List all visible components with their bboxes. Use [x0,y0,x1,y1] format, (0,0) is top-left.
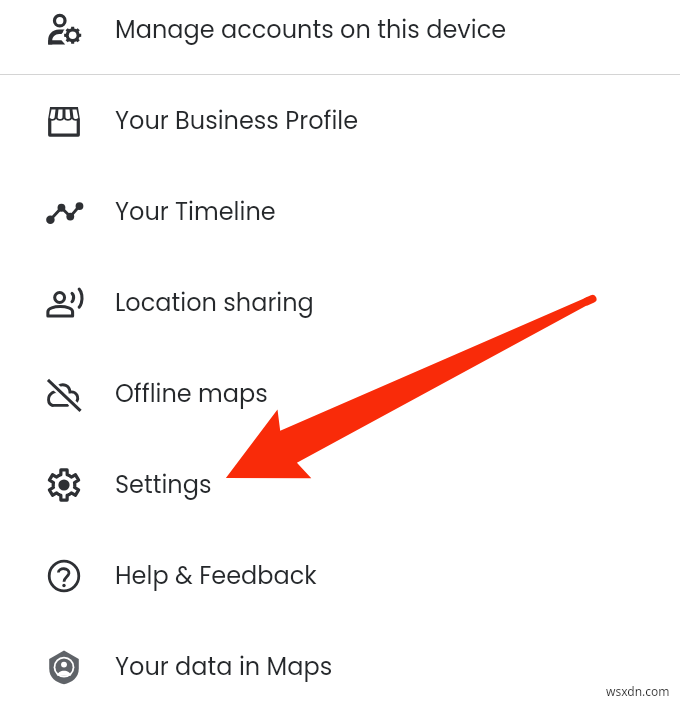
other: Help & Feedback [47,559,81,593]
button[interactable]: Settings [0,439,680,530]
staticText: Help & Feedback [115,559,317,593]
other: Your Timeline [47,195,81,229]
staticText: Manage accounts on this device [115,13,507,47]
staticText: Your Timeline [115,195,276,229]
other: Settings [47,468,81,502]
other: Your data in Maps [47,650,81,684]
other: Your Business Profile [47,104,81,138]
button[interactable]: Your data in Maps [0,621,680,701]
button[interactable]: Your Timeline [0,166,680,257]
button[interactable]: Your Business Profile [0,75,680,166]
button[interactable]: Offline maps [0,348,680,439]
other: Manage accounts [47,13,81,47]
button[interactable]: Help & Feedback [0,530,680,621]
staticText: Location sharing [115,286,314,320]
other: Location sharing [47,286,81,320]
staticText: Your Business Profile [115,104,359,138]
staticText: wsxdn.com [606,683,670,699]
button[interactable]: Location sharing [0,257,680,348]
staticText: Offline maps [115,377,268,411]
staticText: Your data in Maps [115,650,333,684]
other: Offline maps [47,377,81,411]
staticText: Settings [115,468,212,502]
button[interactable]: Manage accounts [0,0,680,75]
